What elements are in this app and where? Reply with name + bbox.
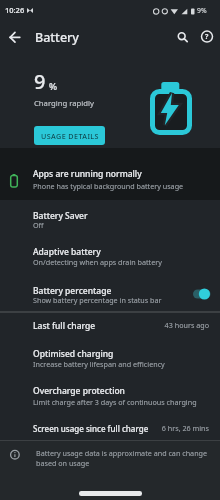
staticText: 6 hrs, 26 mins bbox=[161, 423, 209, 433]
staticText: Optimised charging bbox=[33, 348, 114, 360]
staticText: Battery Saver bbox=[33, 210, 88, 222]
staticText: Screen usage since full charge bbox=[33, 423, 149, 434]
staticText: 10:26 bbox=[5, 5, 25, 15]
button[interactable]: Adaptive battery bbox=[0, 239, 220, 276]
staticText: On/detecting when apps drain battery bbox=[33, 257, 162, 267]
staticText: Battery bbox=[35, 29, 79, 46]
button[interactable]: Apps are running normally bbox=[0, 148, 220, 200]
staticText: Battery usage data is approximate and ca… bbox=[36, 448, 208, 458]
staticText: Increase battery lifespan and efficiency bbox=[33, 359, 165, 369]
staticText: USAGE DETAILS bbox=[41, 131, 99, 141]
staticText: ? bbox=[205, 32, 209, 42]
button[interactable]: USAGE DETAILS bbox=[34, 126, 105, 145]
staticText: 9 bbox=[34, 68, 46, 95]
button[interactable]: Overcharge protection bbox=[0, 377, 220, 415]
staticText: Phone has typical background battery usa… bbox=[33, 181, 184, 191]
staticText: Limit charge after 3 days of continuous … bbox=[33, 397, 197, 407]
staticText: Charging rapidly bbox=[34, 98, 94, 108]
staticText: Overcharge protection bbox=[33, 385, 125, 397]
staticText: Adaptive battery bbox=[33, 246, 101, 258]
button[interactable]: Battery Saver bbox=[0, 203, 220, 239]
button[interactable]: Last full charge bbox=[0, 314, 220, 340]
button[interactable]: ? bbox=[200, 29, 214, 44]
button[interactable]: Screen usage since full charge bbox=[0, 415, 220, 440]
button[interactable] bbox=[6, 28, 25, 47]
staticText: 43 hours ago bbox=[164, 320, 209, 330]
button[interactable] bbox=[174, 28, 191, 45]
button[interactable]: Optimised charging bbox=[0, 340, 220, 377]
staticText: Show battery percentage in status bar bbox=[33, 295, 162, 305]
staticText: Last full charge bbox=[33, 320, 96, 332]
staticText: % bbox=[49, 80, 58, 93]
staticText: Off bbox=[33, 220, 44, 230]
staticText: 9% bbox=[197, 6, 207, 15]
button[interactable]: Battery percentage bbox=[0, 278, 220, 311]
staticText: Apps are running normally bbox=[33, 168, 142, 180]
staticText: Battery percentage bbox=[33, 285, 112, 297]
staticText: based on usage bbox=[36, 458, 90, 468]
